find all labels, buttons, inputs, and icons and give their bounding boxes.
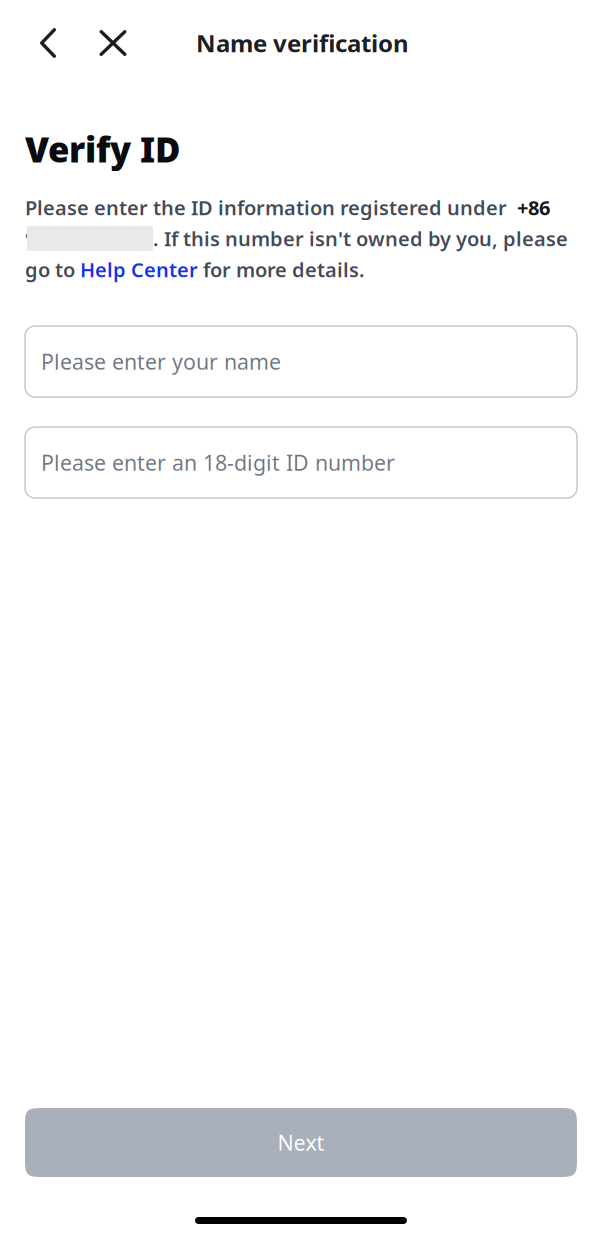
staticText: Next (277, 1128, 324, 1157)
staticText: Please enter an 18-digit ID number (41, 448, 395, 477)
button[interactable]: Close (87, 17, 139, 69)
staticText: Verify ID (25, 126, 180, 172)
staticText: +86 (507, 194, 550, 221)
staticText: Please enter the ID information register… (25, 194, 507, 221)
button[interactable]: Next (25, 1108, 577, 1177)
button[interactable]: Please enter your name (25, 326, 577, 397)
staticText: Help Center (80, 256, 198, 283)
staticText: Please enter your name (41, 347, 281, 376)
staticText: . If this number isn't owned by you, ple… (153, 225, 568, 252)
button[interactable]: Help Center (80, 256, 198, 283)
staticText: for more details. (198, 256, 365, 283)
staticText: Name verification (196, 27, 409, 59)
staticText: ' (25, 229, 29, 248)
button[interactable]: Back (22, 17, 74, 69)
button[interactable]: Please enter an 18-digit ID number (25, 427, 577, 498)
staticText: go to (25, 256, 80, 283)
